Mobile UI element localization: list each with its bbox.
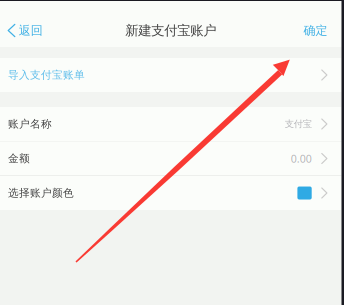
button[interactable]: 账户名称	[0, 107, 341, 141]
staticText: 支付宝	[285, 118, 312, 130]
staticText: 新建支付宝账户	[125, 22, 216, 39]
button[interactable]: 选择账户颜色	[0, 176, 341, 210]
staticText: 0.00	[291, 151, 312, 166]
staticText: 账户名称	[8, 117, 52, 130]
staticText: 确定	[303, 23, 327, 38]
button[interactable]: 金额	[0, 141, 341, 175]
button[interactable]: 确定	[303, 0, 341, 47]
button[interactable]: 返回	[0, 0, 51, 47]
staticText: 选择账户颜色	[8, 186, 74, 199]
staticText: 金额	[8, 152, 30, 165]
staticText: 导入支付宝账单	[8, 68, 85, 81]
button[interactable]: 导入支付宝账单	[0, 58, 341, 92]
staticText: 返回	[19, 23, 43, 38]
